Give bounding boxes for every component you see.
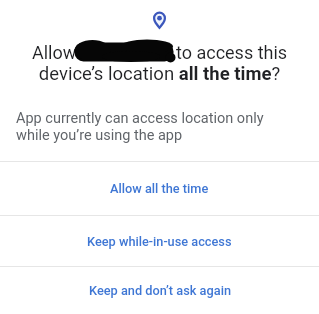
button[interactable]: Keep and don’t ask again	[0, 267, 319, 314]
staticText: Allow all the time	[110, 181, 209, 196]
staticText: Keep and don’t ask again	[89, 283, 231, 298]
staticText: Allow	[32, 42, 81, 63]
button[interactable]: Keep while-in-use access	[0, 216, 319, 266]
staticText: device’s location all the time?	[0, 63, 319, 85]
staticText: to access this	[176, 42, 288, 63]
button[interactable]: Allow all the time	[0, 162, 319, 215]
staticText: App currently can access location only w…	[16, 110, 264, 143]
staticText: Keep while-in-use access	[87, 234, 232, 249]
